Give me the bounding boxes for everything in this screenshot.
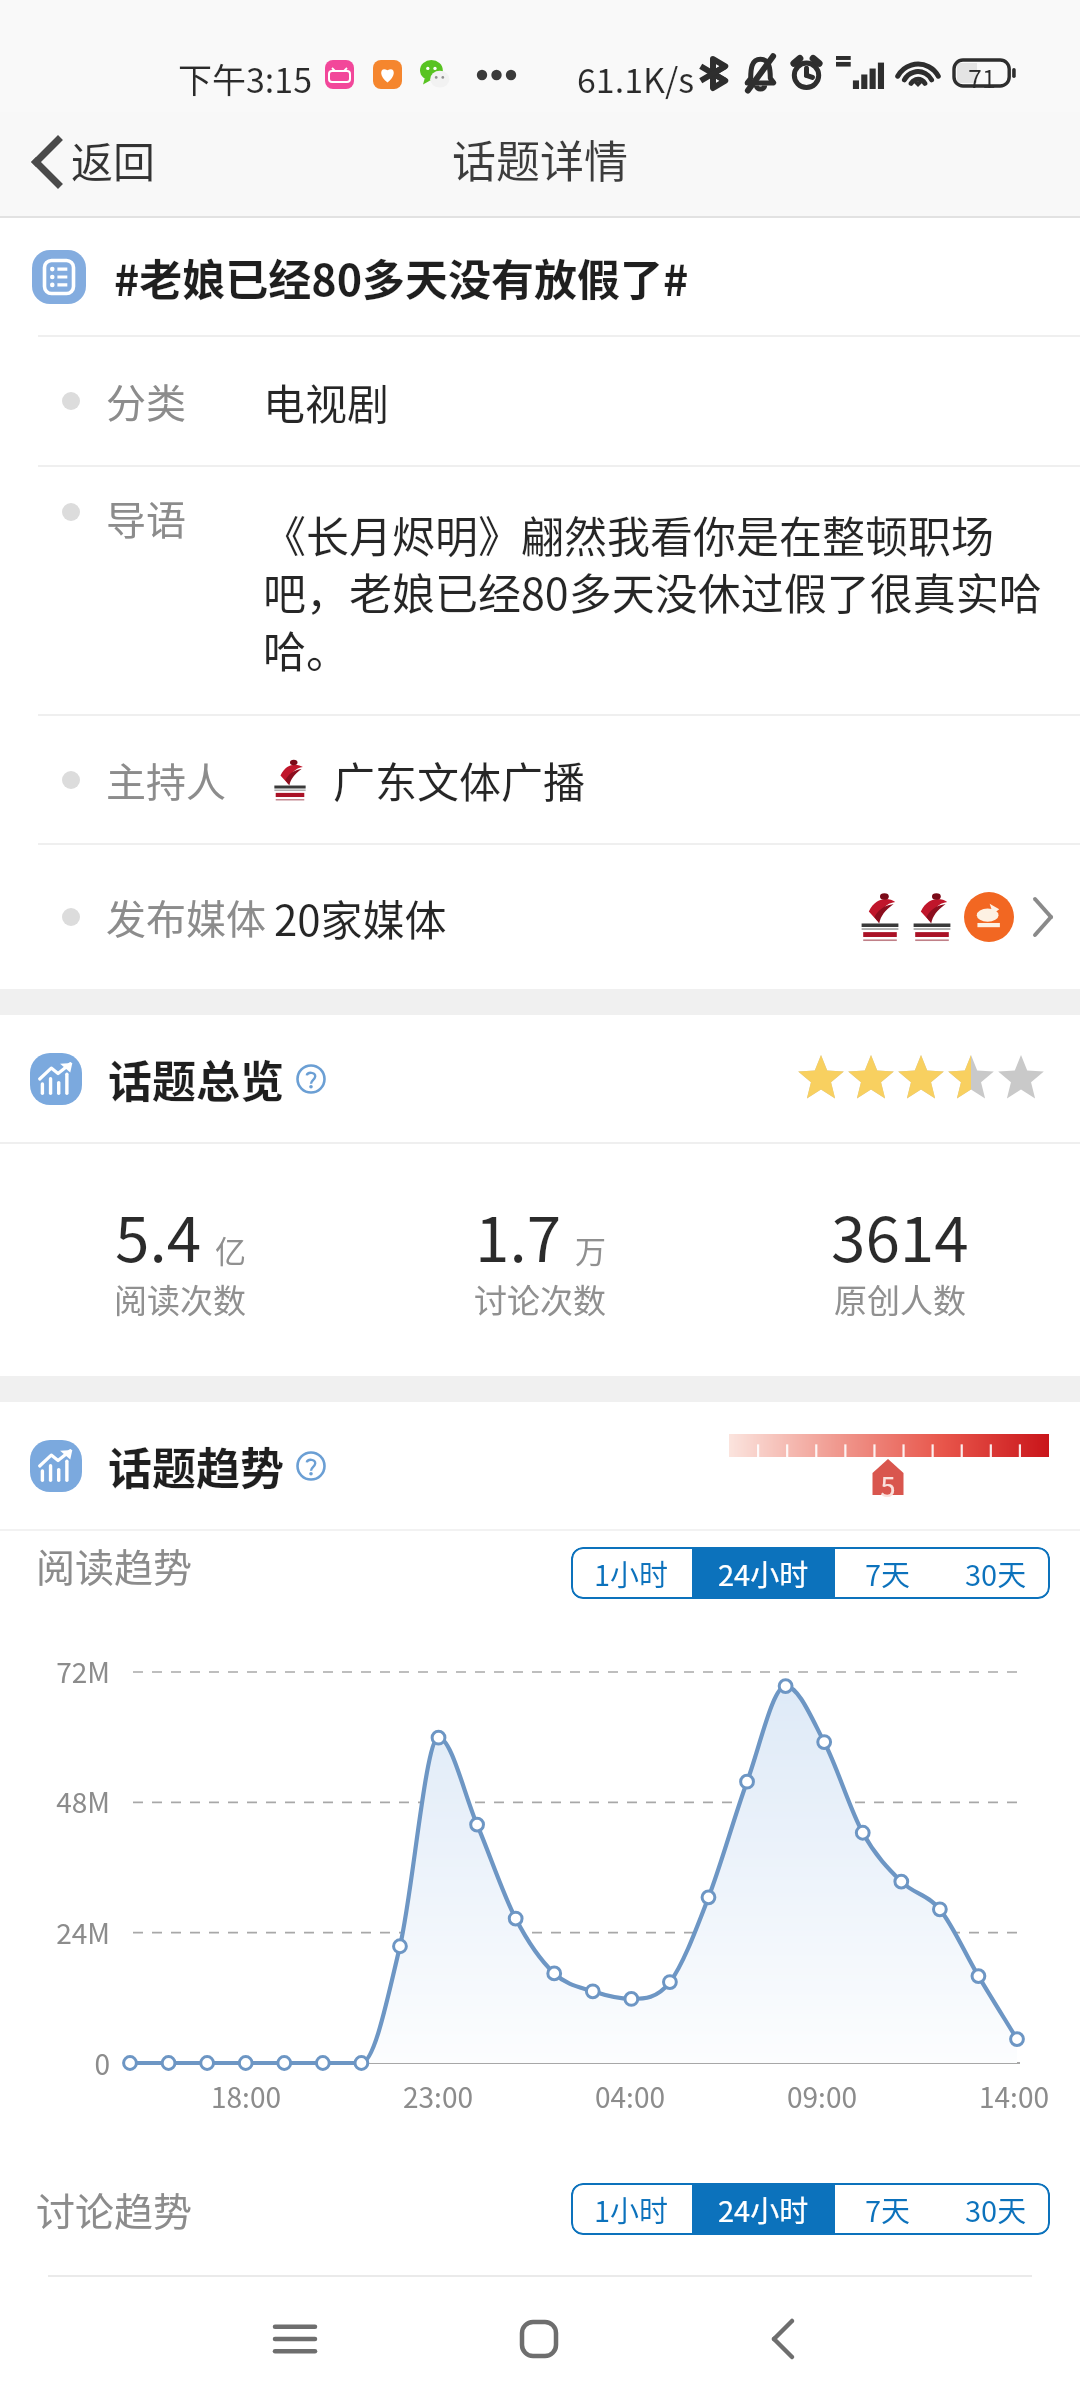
staticText: 原创人数: [834, 1275, 966, 1323]
button[interactable]: 1小时: [571, 2183, 692, 2235]
staticText: 话题趋势: [108, 1434, 284, 1498]
staticText: 发布媒体: [106, 888, 266, 946]
staticText: 5: [873, 1466, 903, 1505]
staticText: 18:00: [176, 2076, 316, 2117]
staticText: 5.4: [115, 1190, 202, 1280]
staticText: 7天: [865, 2188, 911, 2230]
staticText: 1小时: [594, 1552, 669, 1594]
staticText: 30天: [965, 1552, 1027, 1594]
staticText: 1.7: [475, 1190, 562, 1280]
staticText: 24小时: [718, 2188, 809, 2230]
staticText: 24M: [0, 1912, 110, 1953]
staticText: 24小时: [718, 1552, 809, 1594]
staticText: 3614: [831, 1190, 969, 1280]
staticText: 04:00: [560, 2076, 700, 2117]
button[interactable]: Recent apps: [175, 2277, 415, 2400]
button[interactable]: 7天: [835, 1547, 941, 1599]
staticText: 30天: [965, 2188, 1027, 2230]
button[interactable]: 发布媒体: [0, 845, 1080, 989]
staticText: 1小时: [594, 2188, 669, 2230]
button[interactable]: 返回: [0, 112, 180, 218]
staticText: 阅读次数: [114, 1275, 246, 1323]
button[interactable]: Home: [415, 2277, 663, 2400]
staticText: 万: [575, 1227, 606, 1272]
staticText: 23:00: [368, 2076, 508, 2117]
button[interactable]: Back: [663, 2277, 903, 2400]
staticText: 09:00: [752, 2076, 892, 2117]
staticText: 导语: [106, 489, 186, 547]
staticText: 72M: [0, 1651, 110, 1692]
staticText: 话题总览: [108, 1047, 284, 1111]
staticText: 电视剧: [263, 371, 390, 432]
staticText: 主持人: [106, 751, 226, 809]
staticText: 71: [953, 60, 1011, 88]
staticText: 《长月烬明》翩然我看你是在整顿职场吧，老娘已经80多天没休过假了很真实哈哈。: [263, 503, 1053, 681]
button[interactable]: 1小时: [571, 1547, 692, 1599]
staticText: 讨论次数: [474, 1275, 606, 1323]
staticText: 0: [0, 2043, 110, 2084]
button[interactable]: 30天: [941, 1547, 1050, 1599]
staticText: 阅读趋势: [36, 1537, 193, 1593]
staticText: 亿: [215, 1227, 246, 1272]
staticText: 话题详情: [452, 127, 628, 191]
button[interactable]: 30天: [941, 2183, 1050, 2235]
staticText: 返回: [71, 129, 156, 190]
staticText: 讨论趋势: [36, 2181, 193, 2237]
button[interactable]: 24小时: [692, 1547, 835, 1599]
staticText: 广东文体广播: [333, 749, 586, 810]
staticText: #老娘已经80多天没有放假了#: [114, 246, 689, 308]
staticText: 20家媒体: [274, 887, 447, 948]
staticText: 7天: [865, 1552, 911, 1594]
staticText: 下午3:15: [178, 54, 313, 103]
button[interactable]: 7天: [835, 2183, 941, 2235]
staticText: 14:00: [944, 2076, 1080, 2117]
button[interactable]: 24小时: [692, 2183, 835, 2235]
staticText: 分类: [106, 372, 186, 430]
staticText: 48M: [0, 1781, 110, 1822]
staticText: 61.1K/s: [577, 54, 695, 103]
